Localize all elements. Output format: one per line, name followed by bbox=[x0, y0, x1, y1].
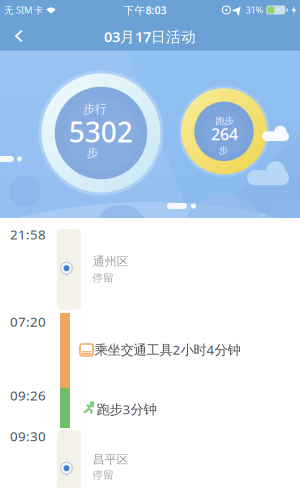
staticText: 步 bbox=[86, 145, 98, 160]
staticText: 跑步3分钟 bbox=[96, 400, 156, 418]
staticText: 步 bbox=[219, 145, 228, 156]
staticText: 停留 bbox=[92, 271, 114, 284]
staticText: 步行 bbox=[83, 102, 107, 116]
staticText: 5302 bbox=[69, 113, 133, 150]
staticText: 07:20 bbox=[10, 313, 46, 330]
staticText: 无 SIM 卡 bbox=[4, 4, 43, 16]
staticText: 09:30 bbox=[10, 427, 46, 445]
staticText: 09:26 bbox=[10, 386, 46, 404]
staticText: 通州区 bbox=[93, 254, 129, 269]
staticText: 昌平区 bbox=[93, 452, 129, 467]
staticText: 264 bbox=[211, 123, 238, 145]
staticText: 31% bbox=[245, 4, 263, 16]
button[interactable]: 返回 bbox=[4, 21, 34, 51]
staticText: 下午8:03 bbox=[123, 3, 166, 17]
staticText: 21:58 bbox=[10, 225, 46, 243]
staticText: 03月17日活动 bbox=[104, 27, 196, 46]
staticText: 乘坐交通工具2小时4分钟 bbox=[94, 341, 240, 358]
staticText: 停留 bbox=[92, 468, 114, 481]
staticText: 跑步 bbox=[215, 115, 233, 127]
